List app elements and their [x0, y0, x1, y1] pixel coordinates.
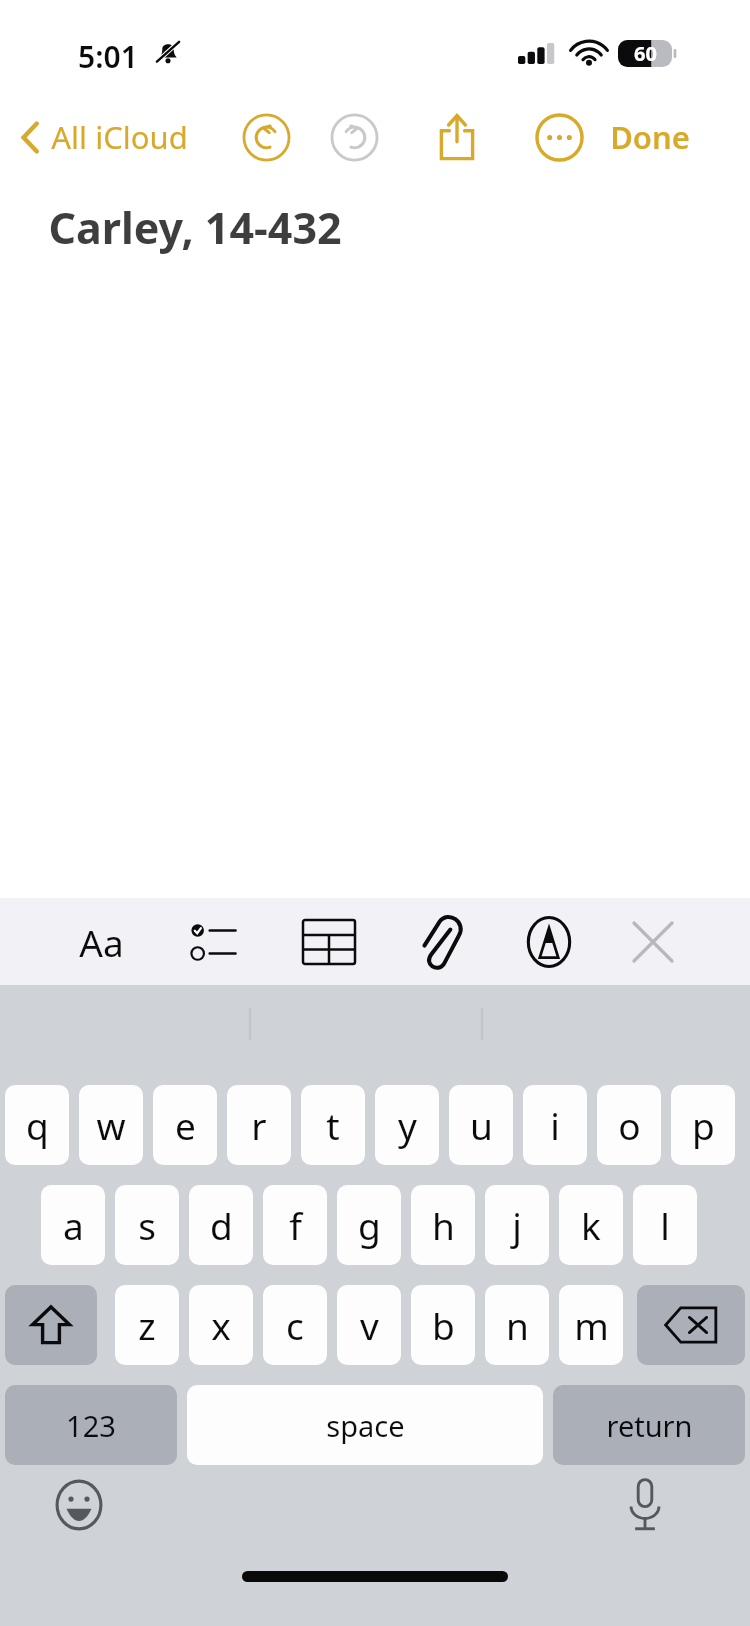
staticText: space	[326, 1406, 405, 1445]
staticText: h	[432, 1200, 455, 1250]
button[interactable]: b	[411, 1285, 475, 1365]
button[interactable]: k	[559, 1185, 623, 1265]
button[interactable]: d	[189, 1185, 253, 1265]
button[interactable]: w	[79, 1085, 143, 1165]
button[interactable]: o	[597, 1085, 661, 1165]
staticText: w	[96, 1100, 126, 1150]
staticText: q	[26, 1100, 49, 1150]
button[interactable]: s	[115, 1185, 179, 1265]
staticText: g	[358, 1200, 381, 1250]
staticText: l	[660, 1200, 670, 1250]
button[interactable]: x	[189, 1285, 253, 1365]
button[interactable]: n	[485, 1285, 549, 1365]
button[interactable]: f	[263, 1185, 327, 1265]
button[interactable]: Share	[429, 109, 485, 165]
button[interactable]: More	[533, 111, 585, 163]
button[interactable]: h	[411, 1185, 475, 1265]
staticText: p	[692, 1100, 715, 1150]
button[interactable]: j	[485, 1185, 549, 1265]
button[interactable]: z	[115, 1285, 179, 1365]
staticText: 123	[66, 1406, 116, 1445]
staticText: j	[512, 1200, 522, 1250]
button[interactable]: Checklist	[175, 898, 253, 985]
staticText: t	[326, 1100, 340, 1150]
button[interactable]: r	[227, 1085, 291, 1165]
button[interactable]: All iCloud	[10, 98, 198, 176]
button[interactable]: i	[523, 1085, 587, 1165]
staticText: 5:01	[78, 36, 138, 77]
staticText: u	[470, 1100, 493, 1150]
staticText: n	[506, 1300, 529, 1350]
staticText: Done	[610, 116, 690, 158]
staticText: s	[138, 1200, 156, 1250]
button[interactable]: u	[449, 1085, 513, 1165]
staticText: return	[606, 1406, 693, 1445]
staticText: e	[175, 1100, 196, 1150]
button[interactable]: g	[337, 1185, 401, 1265]
button[interactable]: m	[559, 1285, 623, 1365]
button[interactable]: e	[153, 1085, 217, 1165]
staticText: d	[210, 1200, 233, 1250]
button[interactable]: q	[5, 1085, 69, 1165]
button[interactable]: Text format	[62, 898, 140, 985]
staticText: m	[574, 1300, 609, 1350]
button[interactable]: a	[41, 1185, 105, 1265]
button[interactable]: Emoji	[47, 1473, 111, 1537]
staticText: x	[211, 1300, 231, 1350]
button[interactable]: Shift	[5, 1285, 97, 1365]
button[interactable]: Done	[594, 98, 706, 176]
button[interactable]: Markup	[510, 898, 588, 985]
staticText: All iCloud	[51, 116, 188, 158]
button[interactable]: y	[375, 1085, 439, 1165]
button[interactable]: c	[263, 1285, 327, 1365]
button[interactable]: v	[337, 1285, 401, 1365]
button[interactable]: Redo	[328, 111, 380, 163]
button[interactable]: Hide keyboard	[614, 898, 692, 985]
button[interactable]: return	[553, 1385, 745, 1465]
staticText: Aa	[79, 917, 124, 967]
button[interactable]: Backspace	[637, 1285, 745, 1365]
button[interactable]: Table	[290, 898, 368, 985]
staticText: a	[63, 1200, 84, 1250]
staticText: v	[360, 1300, 379, 1350]
staticText: z	[138, 1300, 156, 1350]
button[interactable]: Dictate	[613, 1473, 677, 1537]
staticText: f	[289, 1200, 302, 1250]
staticText: k	[581, 1200, 601, 1250]
staticText: o	[618, 1100, 641, 1150]
staticText: c	[286, 1300, 304, 1350]
button[interactable]: Undo	[240, 111, 292, 163]
button[interactable]: l	[633, 1185, 697, 1265]
button[interactable]: t	[301, 1085, 365, 1165]
button[interactable]: space	[187, 1385, 543, 1465]
staticText: b	[432, 1300, 455, 1350]
button[interactable]: p	[671, 1085, 735, 1165]
staticText: r	[251, 1100, 267, 1150]
button[interactable]: Attach	[401, 898, 479, 985]
staticText: 60	[634, 40, 657, 67]
button[interactable]: 123	[5, 1385, 177, 1465]
staticText: y	[398, 1100, 417, 1150]
staticText: Carley, 14-432	[48, 198, 342, 257]
staticText: i	[550, 1100, 560, 1150]
